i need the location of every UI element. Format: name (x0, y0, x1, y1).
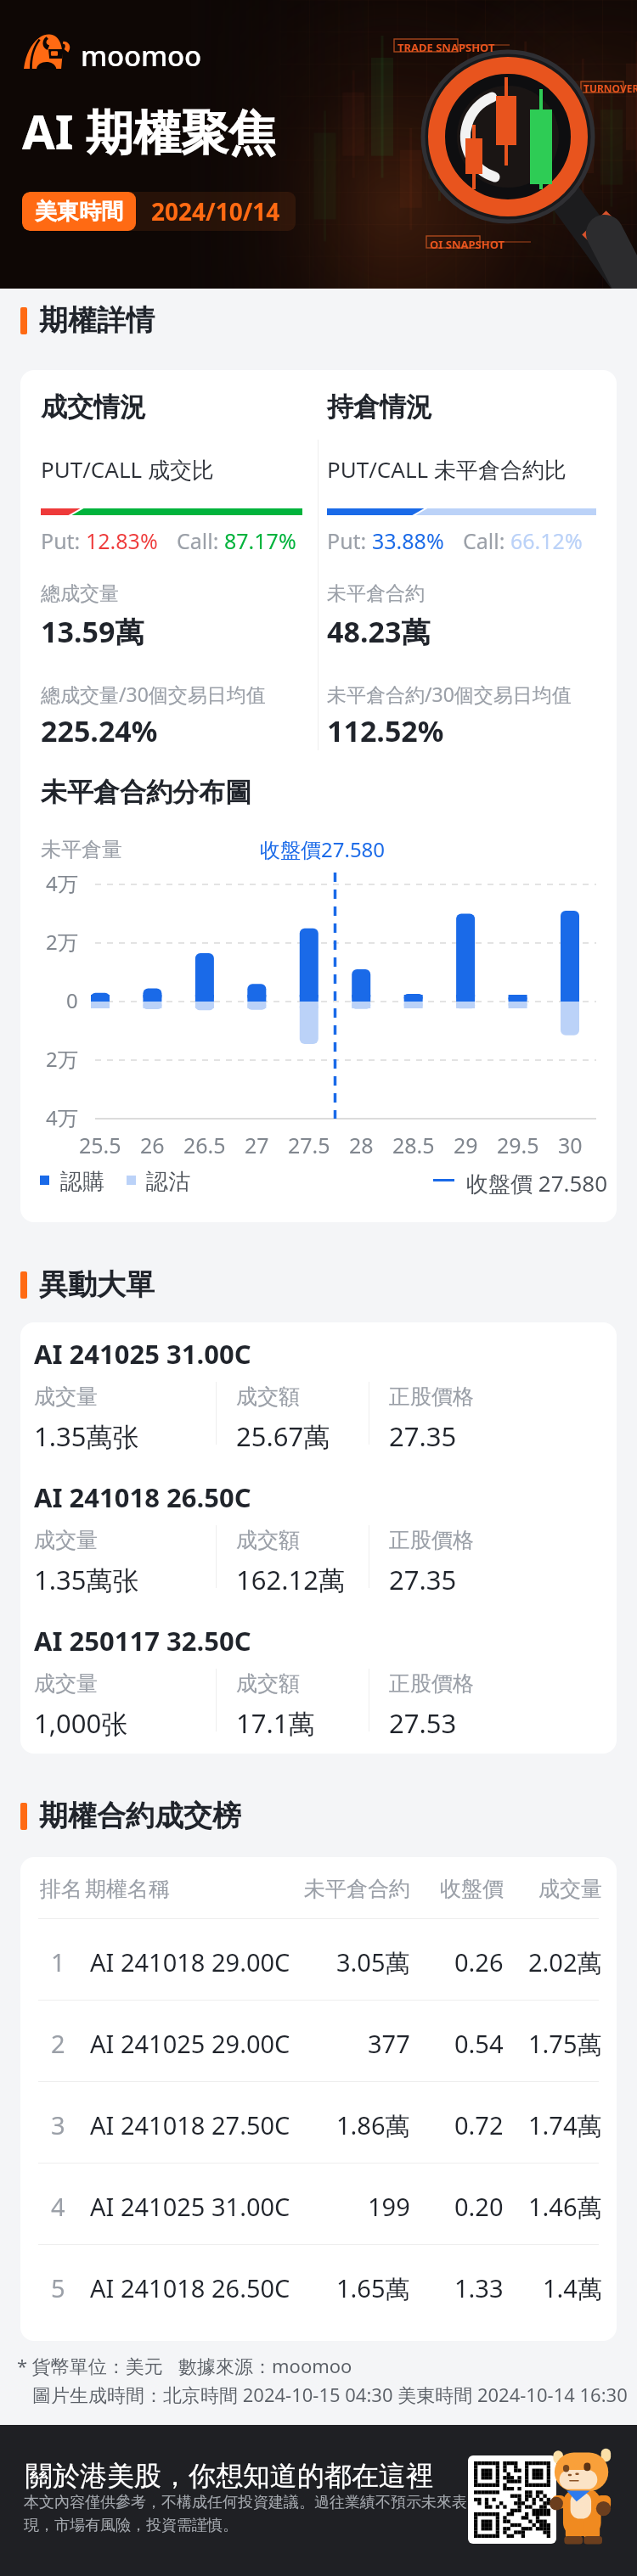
staticText: 12.83% (86, 526, 158, 555)
staticText: AI 241025 31.00C (34, 1336, 251, 1372)
staticText: 期權合約成交榜 (39, 1798, 241, 1834)
staticText: 數據來源：moomoo (178, 2353, 352, 2378)
staticText: 33.88% (372, 526, 444, 555)
staticText: 認購 (60, 1168, 104, 1196)
staticText: AI 250117 32.50C (34, 1623, 251, 1658)
staticText: 29.5 (497, 1131, 539, 1159)
staticText: 3 (51, 2108, 65, 2141)
staticText: Put: (327, 526, 372, 555)
staticText: 未平倉合約分布圖 (41, 776, 251, 809)
staticText: 成交額 (236, 1670, 300, 1697)
staticText: 17.1萬 (236, 1705, 315, 1741)
staticText: 162.12萬 (236, 1562, 345, 1597)
staticText: 2 (51, 2027, 65, 2060)
staticText: 成交情況 (41, 390, 146, 424)
staticText: 1.74萬 (528, 2108, 602, 2142)
staticText: 5 (51, 2271, 65, 2304)
staticText: AI 241025 31.00C (90, 2190, 290, 2223)
staticText: 1.46萬 (528, 2190, 602, 2224)
staticText: 1.33 (454, 2271, 504, 2304)
staticText: 成交量 (34, 1383, 98, 1410)
staticText: Put: (41, 526, 86, 555)
staticText: 2.02萬 (528, 1945, 602, 1979)
staticText: 48.23萬 (327, 612, 431, 651)
staticText: PUT/CALL 未平倉合約比 (327, 454, 567, 485)
staticText: AI 241025 29.00C (90, 2027, 290, 2060)
staticText: 成交額 (236, 1383, 300, 1410)
staticText: 成交額 (236, 1527, 300, 1553)
staticText: 4 (51, 2190, 65, 2223)
button[interactable]: 4 (20, 2164, 617, 2244)
staticText: 4万 (46, 1103, 78, 1131)
staticText: 25.67萬 (236, 1418, 330, 1454)
staticText: 收盤價 27.580 (466, 1168, 608, 1198)
staticText: AI 241018 27.50C (90, 2108, 290, 2141)
staticText: 27.35 (389, 1418, 457, 1454)
staticText: 2024/10/14 (151, 195, 280, 227)
staticText: TURNOVER (583, 81, 637, 95)
staticText: 199 (368, 2190, 410, 2223)
staticText: 正股價格 (389, 1670, 474, 1697)
staticText: 收盤價27.580 (260, 835, 386, 863)
staticText: 112.52% (327, 711, 444, 750)
button[interactable]: 1 (20, 1919, 617, 2000)
staticText: 0 (66, 986, 78, 1014)
staticText: 期權名稱 (85, 1876, 170, 1902)
staticText: AI 241018 29.00C (90, 1945, 290, 1978)
staticText: 2万 (46, 928, 78, 956)
button[interactable]: 5 (20, 2245, 617, 2326)
staticText: 排名 (40, 1876, 82, 1902)
staticText: 2万 (46, 1045, 78, 1073)
staticText: 28.5 (392, 1131, 435, 1159)
staticText: 225.24% (41, 711, 158, 750)
staticText: 1 (51, 1945, 65, 1978)
button[interactable]: 2 (20, 2001, 617, 2081)
staticText: 66.12% (510, 526, 583, 555)
staticText: 未平倉合約 (304, 1876, 410, 1902)
staticText: 未平倉合約 (327, 581, 425, 606)
button[interactable]: 3 (20, 2082, 617, 2163)
staticText: OI SNAPSHOT (430, 237, 505, 252)
button[interactable]: AI 250117 32.50C (20, 1609, 617, 1753)
staticText: 1.35萬张 (34, 1418, 139, 1454)
staticText: 異動大單 (39, 1266, 155, 1303)
staticText: 期權詳情 (39, 302, 155, 339)
staticText: 26 (140, 1131, 165, 1159)
staticText: 13.59萬 (41, 612, 144, 651)
staticText: AI 241018 26.50C (34, 1479, 251, 1515)
staticText: 29 (454, 1131, 478, 1159)
staticText: 美東時間 (35, 198, 123, 226)
staticText: 0.20 (454, 2190, 504, 2223)
staticText: 27.35 (389, 1562, 457, 1597)
staticText: 認沽 (146, 1168, 190, 1196)
staticText: 收盤價 (440, 1876, 504, 1902)
staticText: 1.35萬张 (34, 1562, 139, 1597)
staticText: 0.26 (454, 1945, 504, 1978)
staticText: AI 期權聚焦 (22, 98, 277, 163)
staticText: 圖片生成時間：北京時間 2024-10-15 04:30 美東時間 2024-1… (32, 2382, 628, 2407)
staticText: 持倉情況 (327, 390, 432, 424)
staticText: 0.54 (454, 2027, 504, 2060)
staticText: moomoo (81, 36, 201, 75)
staticText: 1.65萬 (336, 2271, 410, 2305)
button[interactable]: AI 241025 31.00C (20, 1322, 617, 1466)
staticText: 關於港美股，你想知道的都在這裡 (25, 2459, 433, 2493)
staticText: PUT/CALL 成交比 (41, 454, 214, 485)
staticText: 未平倉合約/30個交易日均值 (327, 681, 572, 707)
staticText: 成交量 (34, 1527, 98, 1553)
staticText: 未平倉量 (41, 837, 122, 862)
staticText: 正股價格 (389, 1527, 474, 1553)
staticText: 1.4萬 (543, 2271, 602, 2305)
staticText: AI 241018 26.50C (90, 2271, 290, 2304)
staticText: 成交量 (538, 1876, 602, 1902)
staticText: 正股價格 (389, 1383, 474, 1410)
staticText: TRADE SNAPSHOT (397, 40, 495, 55)
button[interactable]: AI 241018 26.50C (20, 1466, 617, 1609)
staticText: 27.5 (288, 1131, 330, 1159)
staticText: 0.72 (454, 2108, 504, 2141)
staticText: 377 (368, 2027, 410, 2060)
staticText: 總成交量 (41, 581, 119, 606)
staticText: 成交量 (34, 1670, 98, 1697)
staticText: Call: (177, 526, 224, 555)
staticText: 3.05萬 (336, 1945, 410, 1979)
